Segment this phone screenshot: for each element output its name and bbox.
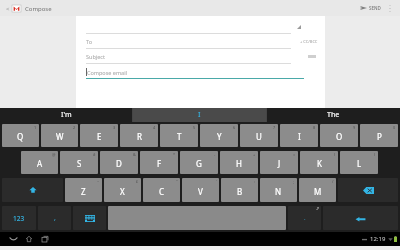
button[interactable]: 9	[320, 124, 358, 147]
button[interactable]: Compose email	[86, 64, 319, 79]
staticText: 9	[353, 125, 356, 130]
staticText: A	[37, 158, 43, 169]
button[interactable]: Switch keyboard	[73, 206, 106, 230]
staticText: Compose	[25, 5, 52, 13]
staticText: Y	[217, 131, 222, 142]
staticText: "	[176, 179, 178, 184]
staticText: I'm	[61, 110, 72, 120]
button[interactable]: 2	[41, 124, 78, 147]
button[interactable]: More options	[384, 0, 396, 16]
staticText: 4	[153, 125, 156, 130]
button[interactable]: /	[299, 178, 336, 202]
staticText: G	[196, 158, 202, 169]
staticText: &	[133, 152, 136, 157]
staticText: 6	[233, 125, 236, 130]
button[interactable]: 4	[120, 124, 158, 147]
staticText: F	[157, 158, 162, 169]
staticText: 3	[113, 125, 116, 130]
button[interactable]: Period	[288, 206, 321, 230]
button[interactable]: 1	[2, 124, 39, 147]
button[interactable]: Recent apps	[37, 232, 53, 246]
staticText: W	[56, 131, 64, 142]
button[interactable]: £	[104, 178, 141, 202]
staticText: T	[177, 131, 182, 142]
staticText: 5	[193, 125, 196, 130]
button[interactable]: :	[221, 178, 258, 202]
staticText: .?	[316, 206, 319, 211]
button[interactable]: To	[86, 34, 319, 49]
button[interactable]: @	[21, 151, 58, 174]
button[interactable]: SEND	[357, 0, 384, 16]
staticText: 8	[313, 125, 316, 130]
staticText: C	[159, 186, 165, 197]
staticText: #	[93, 152, 96, 157]
staticText: 1	[34, 125, 37, 130]
staticText: To	[86, 38, 93, 45]
button[interactable]: ~	[65, 178, 102, 202]
staticText: -	[214, 152, 216, 157]
button[interactable]: ;	[260, 178, 297, 202]
button[interactable]: 5	[160, 124, 198, 147]
button[interactable]: Numbers	[2, 206, 36, 230]
staticText: +	[253, 152, 256, 157]
staticText: 12:19	[370, 235, 386, 243]
staticText: X	[120, 186, 125, 197]
button[interactable]: #	[60, 151, 98, 174]
button[interactable]: I'm	[0, 108, 132, 122]
button[interactable]: Enter	[323, 206, 398, 230]
staticText: =	[293, 152, 296, 157]
button[interactable]: Backspace	[338, 178, 398, 202]
button[interactable]: &	[100, 151, 138, 174]
button[interactable]: 8	[280, 124, 318, 147]
staticText: Z	[81, 186, 86, 197]
button[interactable]: Shift	[2, 178, 63, 202]
button[interactable]: 0	[360, 124, 398, 147]
button[interactable]	[86, 20, 319, 34]
staticText: Subject	[86, 53, 105, 60]
staticText: The	[327, 110, 340, 120]
staticText: Q	[17, 131, 24, 142]
staticText: Compose email	[87, 69, 127, 76]
staticText: .	[304, 214, 306, 222]
staticText: /	[332, 179, 334, 184]
button[interactable]: (	[300, 151, 338, 174]
staticText: ~	[97, 179, 100, 184]
staticText: SEND	[369, 5, 381, 11]
button[interactable]: '	[182, 178, 219, 202]
button[interactable]: +	[220, 151, 258, 174]
staticText: L	[357, 158, 362, 169]
button[interactable]: -	[180, 151, 218, 174]
staticText: )	[374, 152, 376, 157]
staticText: (	[334, 152, 336, 157]
staticText: :	[254, 179, 256, 184]
staticText: O	[336, 131, 343, 142]
button[interactable]: <	[4, 4, 54, 13]
button[interactable]: "	[143, 178, 180, 202]
button[interactable]: Back	[5, 232, 21, 246]
staticText: £	[136, 179, 139, 184]
button[interactable]: *	[140, 151, 178, 174]
staticText: M	[314, 186, 322, 197]
button[interactable]: 3	[80, 124, 118, 147]
button[interactable]: Comma	[38, 206, 71, 230]
staticText: H	[236, 158, 242, 169]
staticText: '	[216, 179, 217, 184]
button[interactable]: 7	[240, 124, 278, 147]
button[interactable]: The	[267, 108, 400, 122]
staticText: J	[278, 158, 281, 169]
staticText: N	[275, 186, 282, 197]
button[interactable]: 6	[200, 124, 238, 147]
button[interactable]: Subject	[86, 49, 319, 64]
staticText: ;	[293, 179, 295, 184]
staticText: B	[237, 186, 243, 197]
staticText: S	[77, 158, 82, 169]
staticText: <	[6, 5, 10, 13]
button[interactable]: I	[133, 108, 266, 122]
staticText: V	[198, 186, 203, 197]
staticText: ,	[54, 213, 56, 223]
button[interactable]: Home	[21, 232, 37, 246]
staticText: 0	[393, 125, 396, 130]
button[interactable]: )	[340, 151, 378, 174]
button[interactable]: =	[260, 151, 298, 174]
